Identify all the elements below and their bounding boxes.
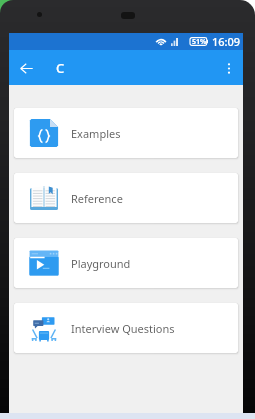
staticText: Playground (71, 256, 131, 271)
button[interactable]: Reference (14, 173, 238, 223)
staticText: C (56, 59, 65, 77)
staticText: 51% (192, 37, 207, 46)
staticText: Interview Questions (71, 321, 175, 336)
staticText: 16:09 (212, 34, 241, 49)
button[interactable]: Back (13, 55, 39, 81)
button[interactable]: More options (216, 55, 242, 81)
staticText: Examples (71, 126, 121, 141)
button[interactable]: Examples (14, 108, 238, 158)
button[interactable]: Interview Questions (14, 303, 238, 353)
staticText: Reference (71, 191, 123, 206)
button[interactable]: Playground (14, 238, 238, 288)
